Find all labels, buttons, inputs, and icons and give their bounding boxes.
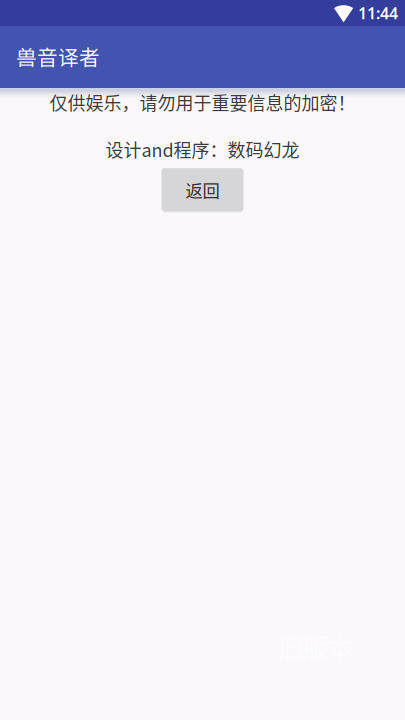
staticText: 11:44 [358, 2, 398, 24]
staticText: 设计and程序：数码幻龙 [105, 136, 299, 162]
staticText: 兽音译者 [16, 41, 100, 71]
button[interactable]: 返回 [161, 168, 243, 211]
staticText: 返回 [185, 177, 219, 202]
staticText: 仅供娱乐，请勿用于重要信息的加密！ [49, 89, 355, 115]
